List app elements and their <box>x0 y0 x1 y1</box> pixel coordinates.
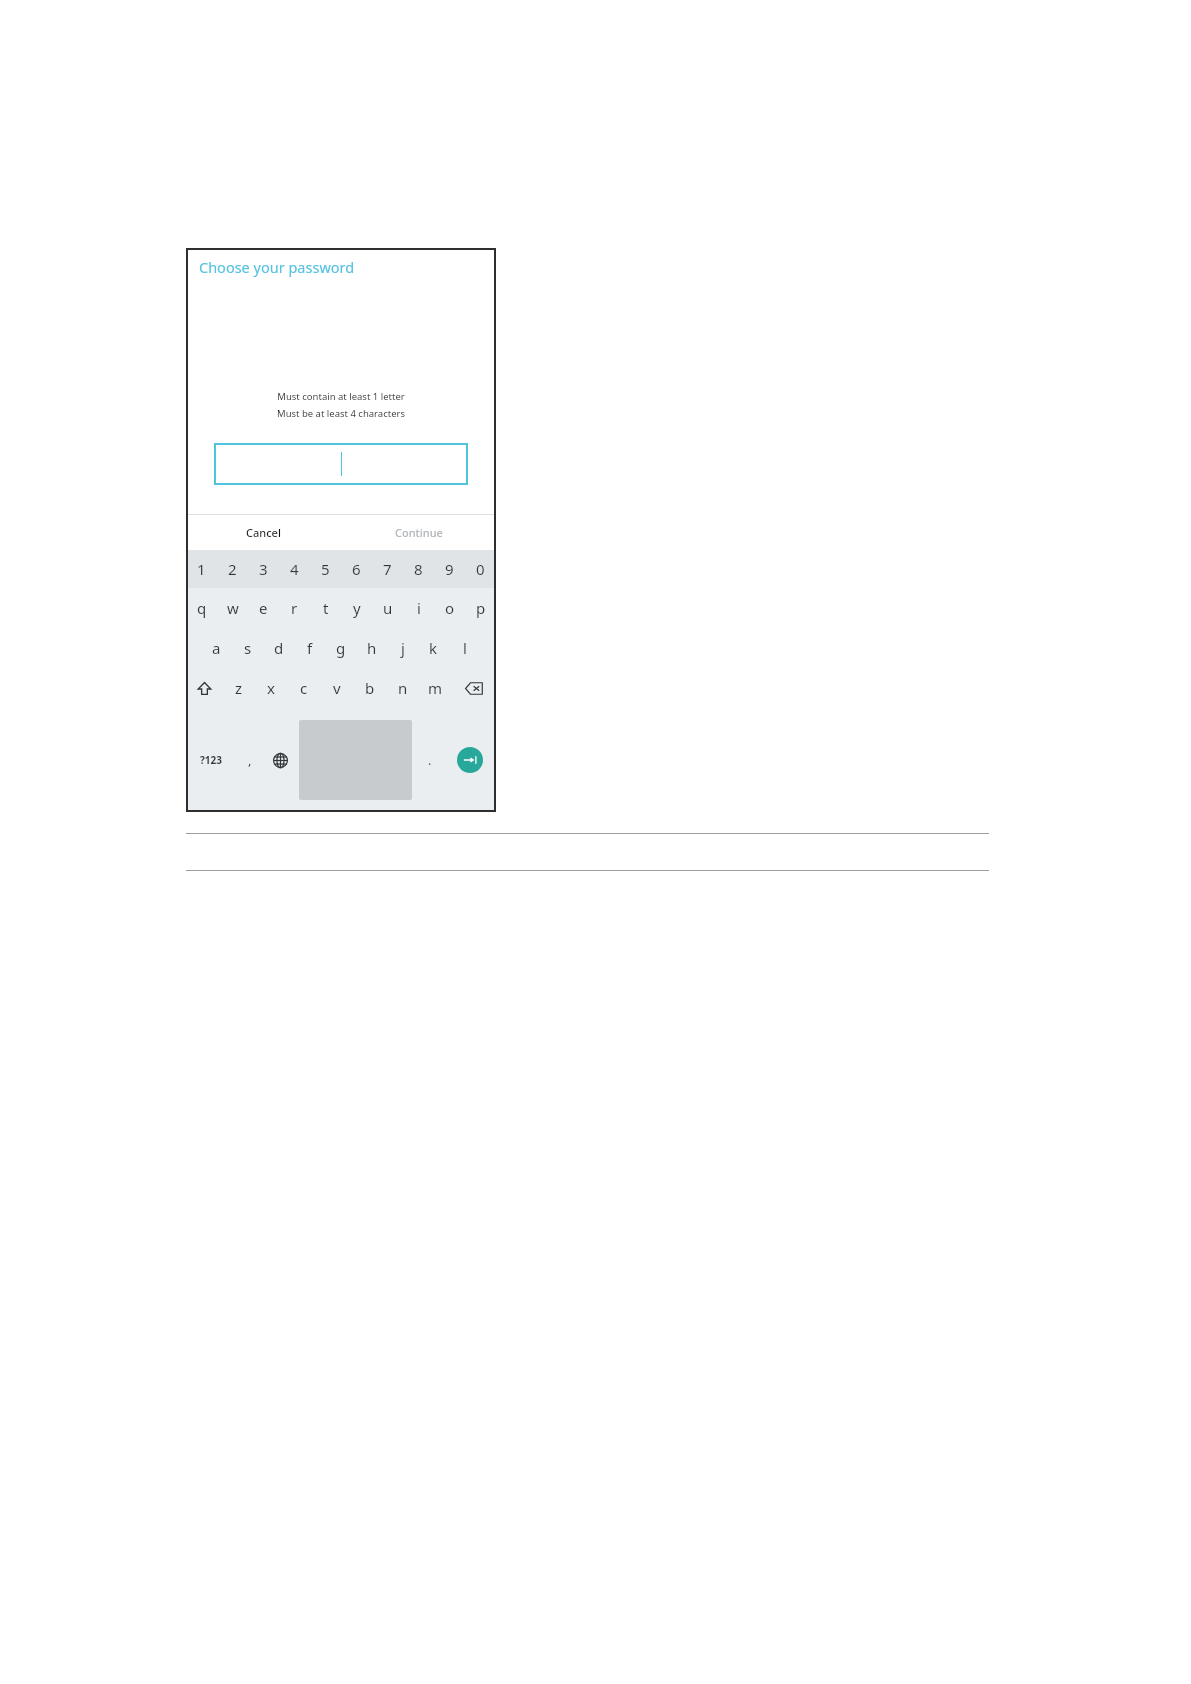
button[interactable]: 6 <box>341 550 372 588</box>
staticText: 4 <box>290 559 299 579</box>
staticText: a <box>212 638 221 658</box>
button[interactable]: p <box>465 588 496 628</box>
staticText: 9 <box>445 559 454 579</box>
staticText: Must contain at least 1 letter <box>277 390 405 403</box>
staticText: Cancel <box>246 525 281 540</box>
button[interactable]: y <box>341 588 372 628</box>
staticText: 5 <box>321 559 330 579</box>
staticText: e <box>259 598 268 618</box>
staticText: b <box>365 678 375 698</box>
button[interactable]: v <box>320 668 353 708</box>
button[interactable]: a <box>201 628 232 668</box>
staticText: Must be at least 4 characters <box>277 407 405 420</box>
staticText: 1 <box>197 559 206 579</box>
staticText: 0 <box>476 559 485 579</box>
staticText: w <box>227 598 239 618</box>
button[interactable]: Change language <box>264 708 296 812</box>
staticText: , <box>248 751 252 769</box>
button[interactable]: j <box>387 628 418 668</box>
button[interactable]: c <box>287 668 320 708</box>
staticText: o <box>445 598 455 618</box>
staticText: s <box>244 638 252 658</box>
button[interactable]: r <box>279 588 310 628</box>
button[interactable]: Cancel <box>186 515 341 550</box>
button[interactable]: , <box>235 708 264 812</box>
staticText: 6 <box>352 559 361 579</box>
button[interactable] <box>214 443 468 485</box>
button[interactable]: Continue <box>341 515 496 550</box>
staticText: y <box>353 598 361 618</box>
staticText: l <box>463 638 467 658</box>
button[interactable]: m <box>419 668 452 708</box>
button[interactable]: f <box>294 628 325 668</box>
button[interactable]: 8 <box>403 550 434 588</box>
staticText: p <box>476 598 486 618</box>
staticText: 7 <box>383 559 392 579</box>
button[interactable]: q <box>186 588 217 628</box>
staticText: d <box>274 638 284 658</box>
staticText: ?123 <box>200 753 222 767</box>
button[interactable]: n <box>386 668 419 708</box>
button[interactable]: w <box>217 588 248 628</box>
staticText: g <box>336 638 346 658</box>
button[interactable]: . <box>415 708 444 812</box>
staticText: c <box>300 678 308 698</box>
staticText: k <box>429 638 438 658</box>
button[interactable]: 3 <box>248 550 279 588</box>
staticText: z <box>235 678 243 698</box>
button[interactable]: ?123 <box>186 708 235 812</box>
button[interactable]: 4 <box>279 550 310 588</box>
button[interactable]: o <box>434 588 465 628</box>
button[interactable]: 7 <box>372 550 403 588</box>
button[interactable]: Shift <box>186 668 223 708</box>
button[interactable]: b <box>353 668 386 708</box>
staticText: i <box>417 598 421 618</box>
button[interactable]: 9 <box>434 550 465 588</box>
staticText: 8 <box>414 559 423 579</box>
staticText: j <box>401 638 405 658</box>
staticText: u <box>383 598 393 618</box>
button[interactable]: h <box>356 628 387 668</box>
staticText: 3 <box>259 559 268 579</box>
button[interactable]: u <box>372 588 403 628</box>
staticText: r <box>291 598 298 618</box>
staticText: Continue <box>395 525 443 540</box>
staticText: x <box>267 678 275 698</box>
button[interactable]: 1 <box>186 550 217 588</box>
staticText: v <box>333 678 341 698</box>
button[interactable]: i <box>403 588 434 628</box>
staticText: t <box>323 598 329 618</box>
button[interactable]: s <box>232 628 263 668</box>
staticText: . <box>428 751 432 769</box>
staticText: Choose your password <box>199 257 355 277</box>
button[interactable]: g <box>325 628 356 668</box>
staticText: m <box>428 678 443 698</box>
button[interactable]: k <box>418 628 449 668</box>
staticText: 2 <box>228 559 237 579</box>
button[interactable]: z <box>223 668 255 708</box>
button[interactable]: l <box>449 628 480 668</box>
button[interactable]: Backspace <box>452 668 496 708</box>
button[interactable]: x <box>255 668 287 708</box>
button[interactable]: t <box>310 588 341 628</box>
staticText: h <box>367 638 377 658</box>
button[interactable]: e <box>248 588 279 628</box>
button[interactable]: d <box>263 628 294 668</box>
button[interactable]: 5 <box>310 550 341 588</box>
button[interactable]: 2 <box>217 550 248 588</box>
staticText: n <box>398 678 408 698</box>
button[interactable]: 0 <box>465 550 496 588</box>
staticText: f <box>307 638 313 658</box>
button[interactable]: Enter <box>457 747 483 773</box>
staticText: q <box>197 598 207 618</box>
